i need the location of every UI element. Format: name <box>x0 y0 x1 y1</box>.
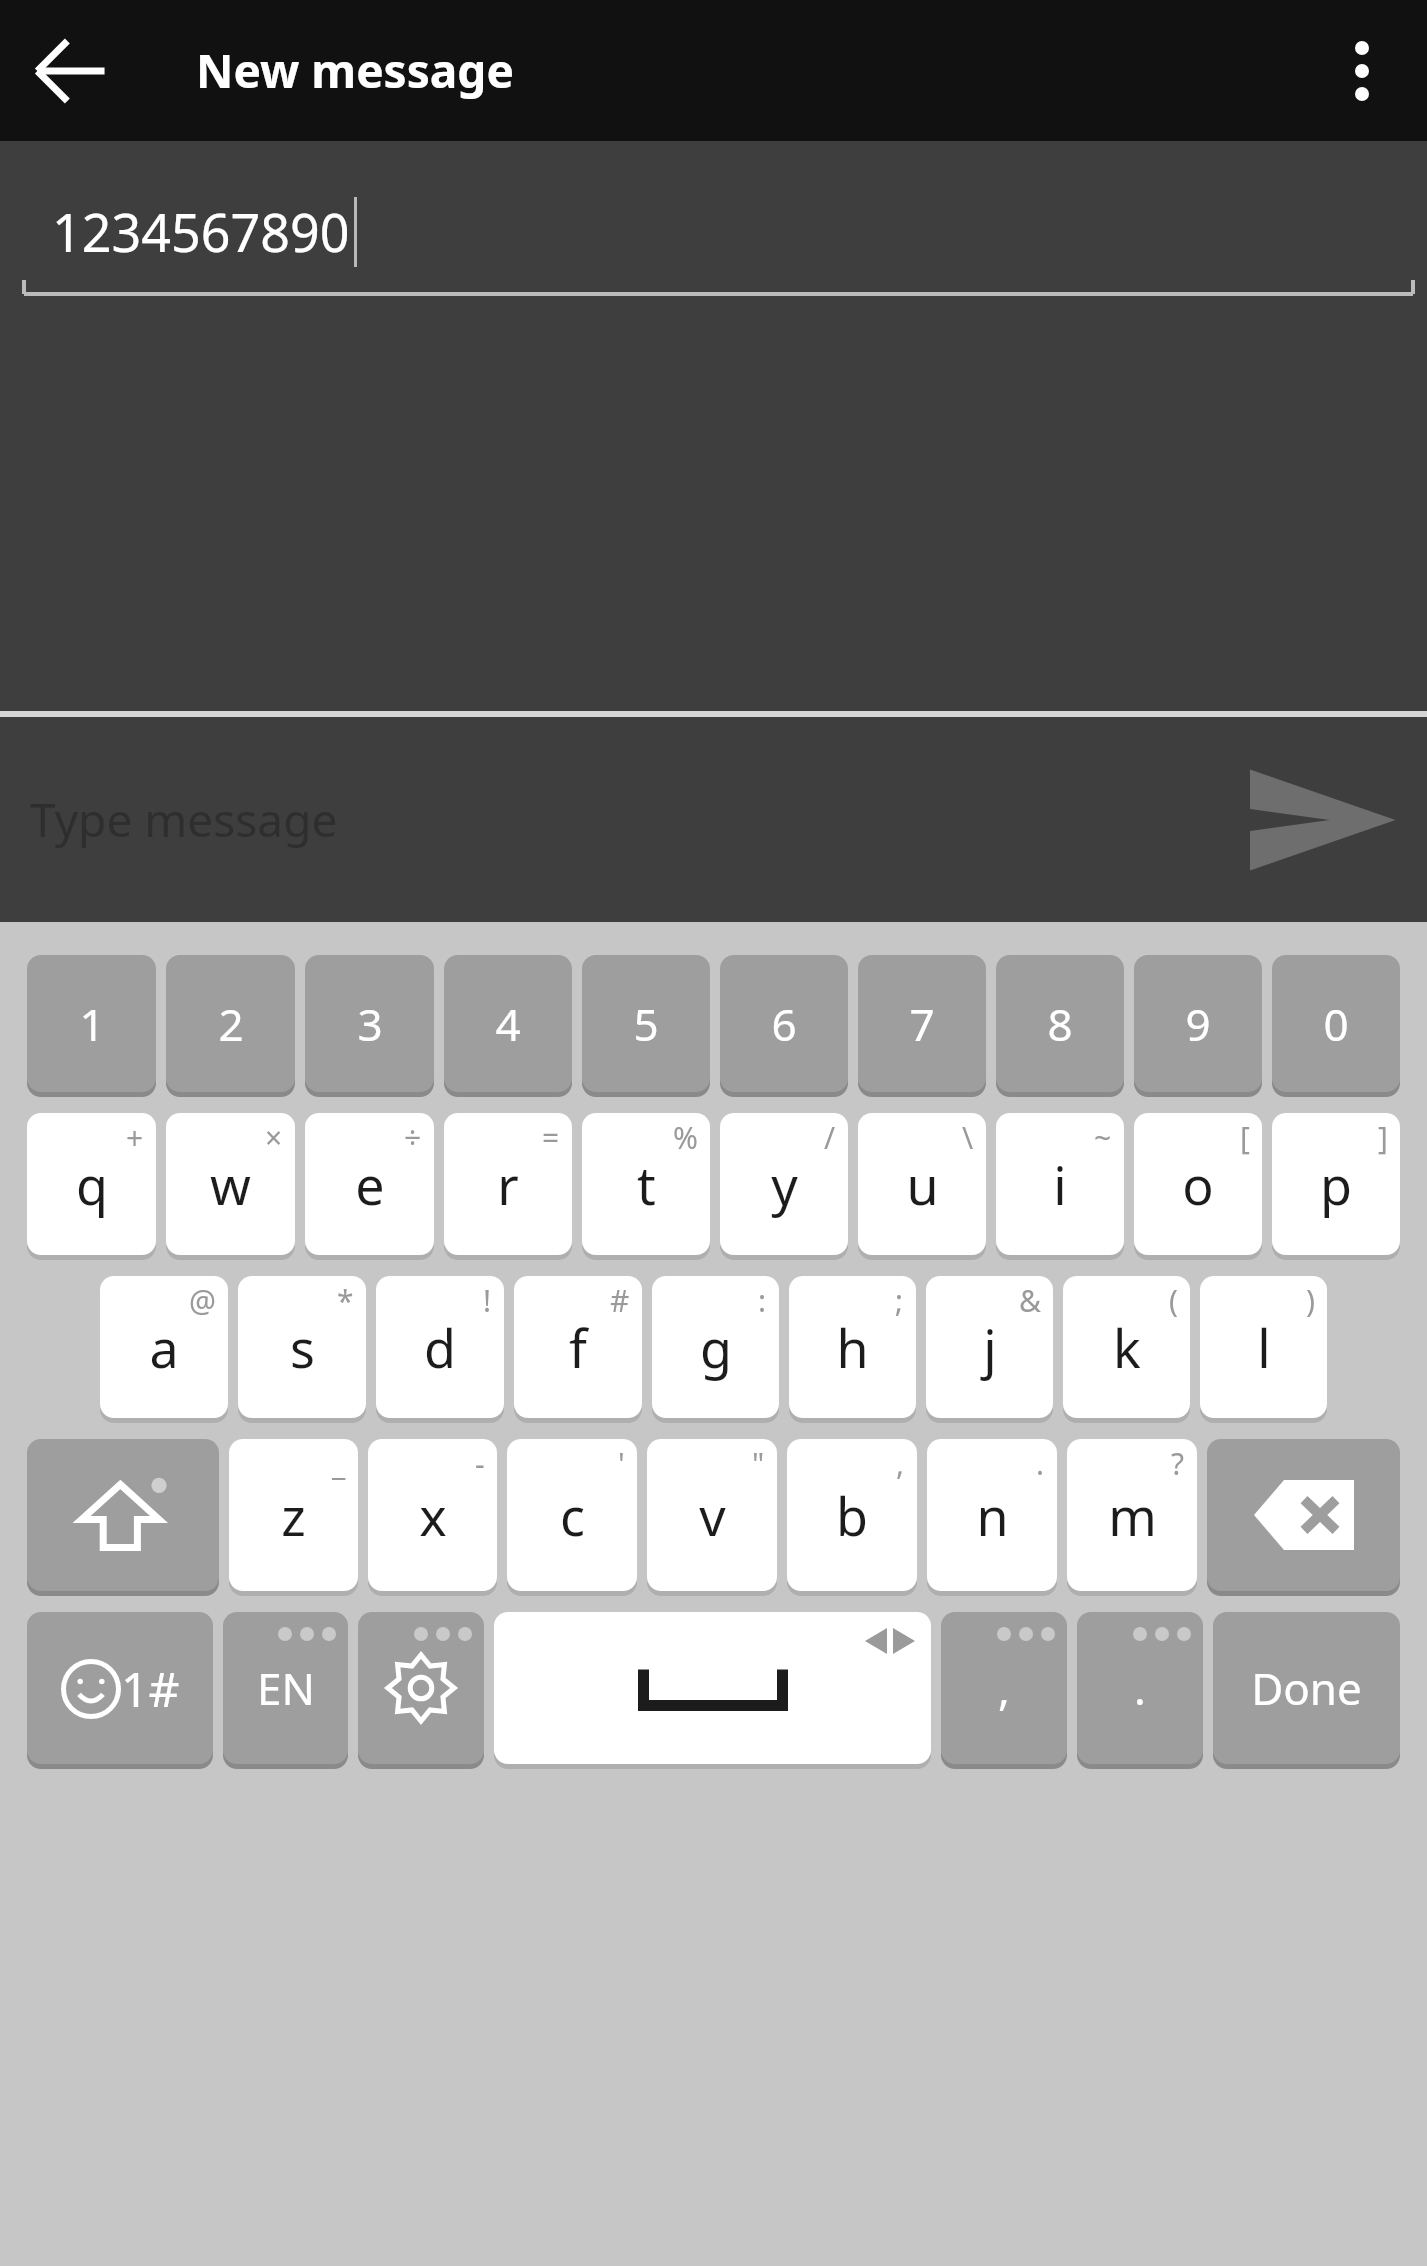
staticText: g <box>700 1312 732 1383</box>
staticText: ) <box>1306 1280 1315 1321</box>
button[interactable]: 8 <box>996 955 1124 1092</box>
staticText: \ <box>962 1117 974 1158</box>
staticText: i <box>1053 1149 1067 1220</box>
staticText: @ <box>189 1280 216 1321</box>
staticText: 5 <box>633 994 659 1054</box>
staticText: 9 <box>1185 994 1211 1054</box>
button[interactable]: Backspace <box>1207 1439 1400 1591</box>
staticText: e <box>355 1149 385 1220</box>
staticText: n <box>976 1480 1009 1551</box>
button[interactable]: # <box>514 1276 642 1418</box>
button[interactable]: \ <box>858 1113 986 1255</box>
staticText: = <box>542 1117 560 1158</box>
staticText: Type message <box>30 788 338 851</box>
button[interactable]: * <box>238 1276 366 1418</box>
staticText: t <box>637 1149 656 1220</box>
button[interactable]: % <box>582 1113 710 1255</box>
staticText: × <box>265 1117 283 1158</box>
staticText: # <box>610 1280 630 1321</box>
button[interactable]: Send <box>1247 765 1397 875</box>
button[interactable]: , <box>941 1612 1067 1764</box>
staticText: r <box>497 1149 519 1220</box>
button[interactable]: 2 <box>166 955 295 1092</box>
button[interactable]: Language <box>223 1612 348 1764</box>
staticText: , <box>896 1443 905 1484</box>
button[interactable]: = <box>444 1113 572 1255</box>
staticText: k <box>1113 1312 1141 1383</box>
button[interactable]: ( <box>1063 1276 1190 1418</box>
button[interactable]: 1 <box>27 955 156 1092</box>
button[interactable]: 7 <box>858 955 986 1092</box>
button[interactable]: ) <box>1200 1276 1327 1418</box>
staticText: 8 <box>1047 994 1073 1054</box>
button[interactable]: + <box>27 1113 156 1255</box>
button[interactable]: / <box>720 1113 848 1255</box>
button[interactable]: 4 <box>444 955 572 1092</box>
button[interactable]: " <box>647 1439 777 1591</box>
button[interactable]: More options <box>1319 28 1405 114</box>
staticText: 2 <box>218 994 244 1054</box>
staticText: ÷ <box>404 1117 422 1158</box>
staticText: . <box>1134 1658 1146 1718</box>
button[interactable]: : <box>652 1276 779 1418</box>
staticText: y <box>771 1149 798 1220</box>
button[interactable]: _ <box>229 1439 358 1591</box>
staticText: [ <box>1240 1117 1250 1158</box>
staticText: ! <box>483 1280 492 1321</box>
button[interactable]: 5 <box>582 955 710 1092</box>
button[interactable]: 0 <box>1272 955 1400 1092</box>
button[interactable]: Shift <box>27 1439 219 1591</box>
staticText: m <box>1108 1480 1157 1551</box>
button[interactable]: ; <box>789 1276 916 1418</box>
staticText: + <box>126 1117 144 1158</box>
staticText: 1 <box>79 994 105 1054</box>
staticText: z <box>281 1480 306 1551</box>
staticText: o <box>1182 1149 1214 1220</box>
button[interactable]: Back <box>22 23 118 119</box>
button[interactable]: [ <box>1134 1113 1262 1255</box>
button[interactable]: & <box>926 1276 1053 1418</box>
staticText: ] <box>1378 1117 1388 1158</box>
button[interactable]: ? <box>1067 1439 1197 1591</box>
staticText: ; <box>895 1280 904 1321</box>
button[interactable]: . <box>927 1439 1057 1591</box>
staticText: % <box>673 1117 698 1158</box>
staticText: EN <box>257 1658 315 1718</box>
button[interactable]: Settings <box>358 1612 484 1764</box>
staticText: h <box>836 1312 869 1383</box>
button[interactable]: - <box>368 1439 497 1591</box>
staticText: w <box>210 1149 251 1220</box>
staticText: Done <box>1251 1658 1362 1718</box>
button[interactable]: @ <box>100 1276 228 1418</box>
staticText: ? <box>1171 1443 1185 1484</box>
button[interactable]: , <box>787 1439 917 1591</box>
button[interactable]: × <box>166 1113 295 1255</box>
staticText: ~ <box>1094 1117 1112 1158</box>
button[interactable] <box>0 717 1427 922</box>
staticText: ' <box>618 1443 625 1484</box>
button[interactable]: 1234567890 <box>0 171 1427 291</box>
button[interactable]: ÷ <box>305 1113 434 1255</box>
staticText: c <box>560 1480 585 1551</box>
staticText: v <box>699 1480 726 1551</box>
staticText: . <box>1036 1443 1045 1484</box>
staticText: b <box>836 1480 868 1551</box>
button[interactable]: ] <box>1272 1113 1400 1255</box>
button[interactable]: ~ <box>996 1113 1124 1255</box>
staticText: 4 <box>495 994 521 1054</box>
button[interactable]: Emoji and symbols <box>27 1612 213 1764</box>
staticText: - <box>475 1443 485 1484</box>
button[interactable]: Done <box>1213 1612 1400 1764</box>
staticText: j <box>983 1312 997 1383</box>
staticText: x <box>419 1480 447 1551</box>
button[interactable]: ' <box>507 1439 637 1591</box>
staticText: 1# <box>121 1656 180 1721</box>
staticText: _ <box>332 1443 346 1484</box>
staticText: d <box>424 1312 456 1383</box>
button[interactable]: . <box>1077 1612 1203 1764</box>
button[interactable]: ! <box>376 1276 504 1418</box>
button[interactable]: 3 <box>305 955 434 1092</box>
button[interactable]: 9 <box>1134 955 1262 1092</box>
button[interactable]: 6 <box>720 955 848 1092</box>
button[interactable] <box>494 1612 931 1764</box>
